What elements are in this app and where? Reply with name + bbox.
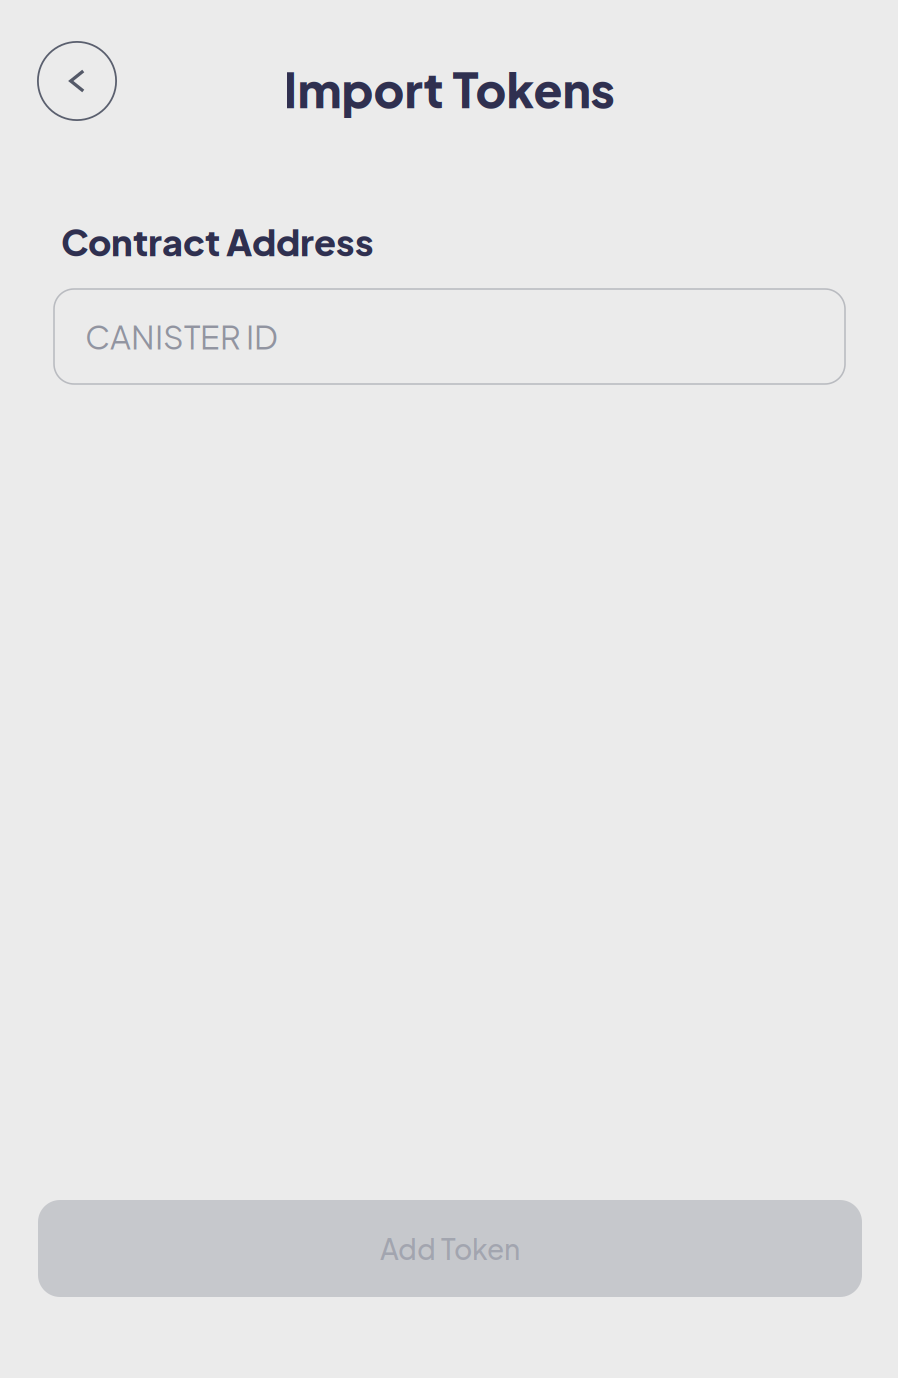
staticText: CANISTER ID [85,316,278,357]
button[interactable]: Back [37,41,117,121]
staticText: Contract Address [61,219,374,264]
button[interactable]: CANISTER ID [54,289,845,384]
staticText: Import Tokens [283,59,614,119]
staticText: Add Token [380,1231,520,1266]
button[interactable]: Add Token [38,1200,862,1297]
